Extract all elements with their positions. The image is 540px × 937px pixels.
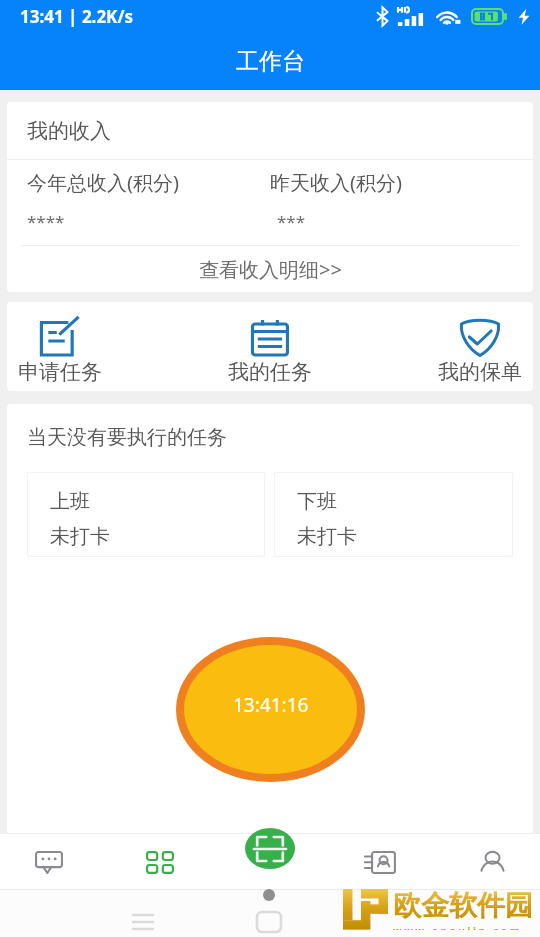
staticText: 查看收入明细>> [199, 256, 342, 283]
button[interactable]: 申请任务 [18, 302, 102, 391]
staticText: 今年总收入(积分) [27, 169, 179, 196]
staticText: 未打卡 [297, 524, 357, 549]
staticText: 下班 [297, 489, 337, 514]
button[interactable]: Messages [0, 833, 108, 889]
staticText: 我的收入 [27, 118, 111, 144]
staticText: w w w . a p o u j i n . c o m [393, 924, 520, 930]
staticText: 昨天收入(积分) [270, 169, 402, 196]
staticText: *** [277, 210, 306, 233]
button[interactable]: 查看收入明细>> [7, 246, 533, 292]
button[interactable]: 下班 [274, 472, 513, 557]
button[interactable]: Scan [245, 828, 295, 869]
button[interactable]: 上班 [27, 472, 265, 557]
staticText: 我的任务 [228, 359, 312, 385]
staticText: 欧金软件园 [393, 888, 533, 923]
staticText: 上班 [50, 489, 90, 514]
button[interactable]: 我的任务 [228, 302, 312, 391]
button[interactable]: Workbench [108, 833, 216, 889]
staticText: 我的保单 [438, 359, 522, 385]
staticText: 13:41 | 2.2K/s [20, 5, 133, 28]
button[interactable]: 13:41:16 [176, 637, 365, 782]
staticText: 工作台 [236, 47, 305, 76]
button[interactable]: Profile [432, 833, 540, 889]
staticText: 当天没有要执行的任务 [27, 425, 227, 450]
staticText: 申请任务 [18, 359, 102, 385]
button[interactable]: 我的收入 [7, 102, 533, 159]
button[interactable]: 我的保单 [438, 302, 522, 391]
staticText: 13:41:16 [233, 692, 309, 718]
staticText: 未打卡 [50, 524, 110, 549]
button[interactable]: Contacts [324, 833, 432, 889]
staticText: **** [27, 210, 65, 233]
